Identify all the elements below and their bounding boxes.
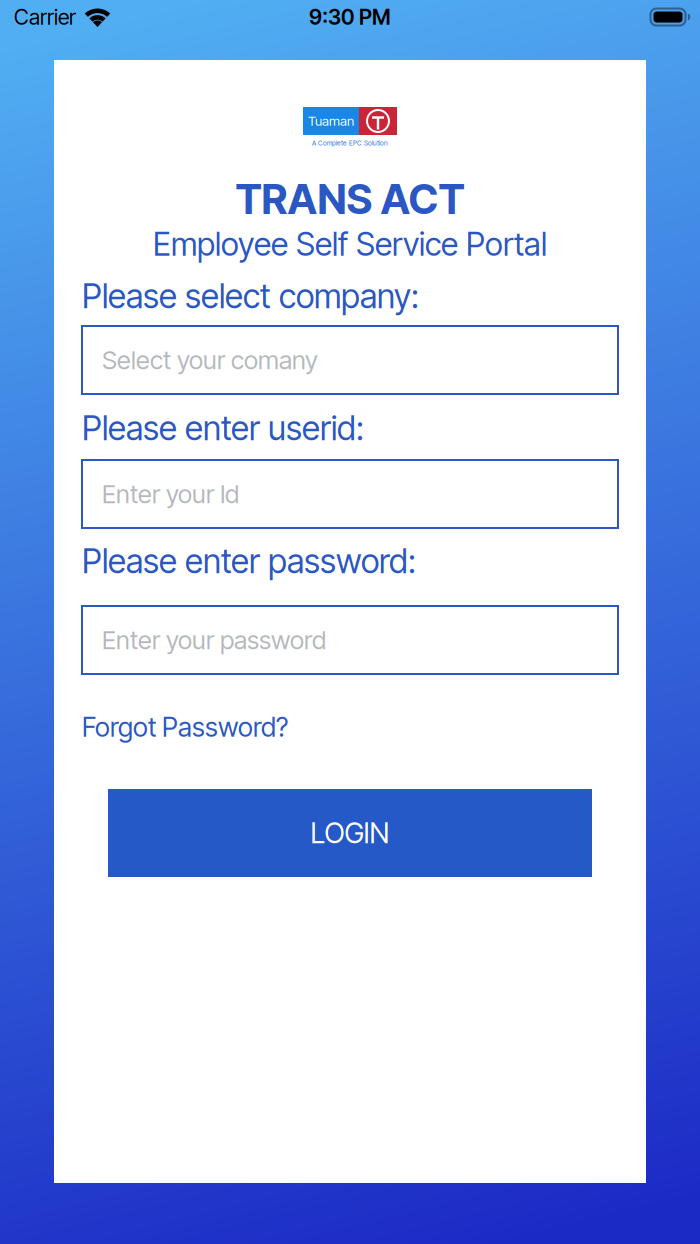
staticText: 9:30 PM [309,4,391,30]
staticText: Tuaman [308,113,354,129]
button[interactable]: Forgot Password? [82,711,288,743]
staticText: A Complete EPC Solution [312,139,388,147]
button[interactable]: Enter your Id [82,460,618,528]
staticText: TRANS ACT [235,175,464,223]
staticText: LOGIN [310,816,389,849]
button[interactable]: Enter your password [82,606,618,674]
staticText: Enter your password [102,625,326,655]
staticText: Enter your Id [102,479,239,509]
staticText: Please select company: [82,276,419,316]
staticText: Employee Self Service Portal [153,225,547,263]
staticText: Carrier [14,4,76,30]
staticText: Please enter password: [82,541,416,581]
staticText: Forgot Password? [82,711,288,743]
staticText: Select your comany [102,345,318,375]
staticText: Please enter userid: [82,408,364,448]
button[interactable]: Select your comany [82,326,618,394]
button[interactable]: LOGIN [108,789,592,877]
